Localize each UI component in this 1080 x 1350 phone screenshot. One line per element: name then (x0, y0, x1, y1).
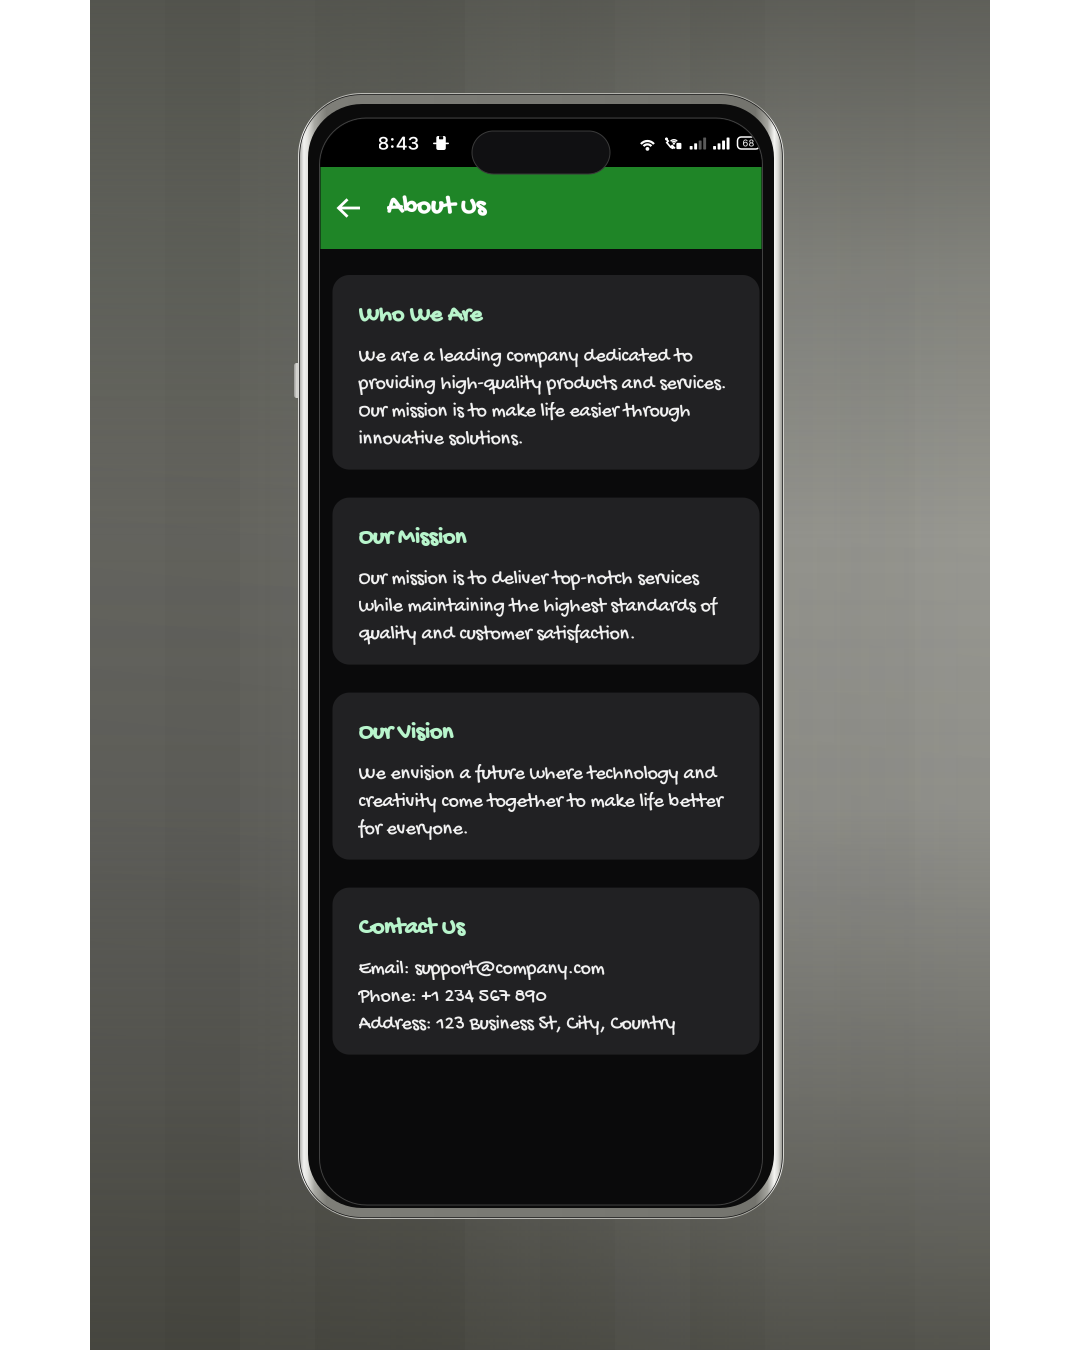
staticText: for everyone. (358, 818, 468, 842)
staticText: We envision a future where technology an… (358, 763, 716, 786)
staticText: Our Vision (358, 720, 452, 748)
staticText: Address: 123 Business St, City, Country (358, 1013, 675, 1037)
button[interactable]: Who We Are (320, 275, 761, 470)
staticText: 8:43 (377, 132, 419, 154)
staticText: 68 (742, 137, 754, 149)
staticText: We are a leading company dedicated to (358, 345, 692, 369)
staticText: About Us (386, 192, 485, 224)
staticText: Our mission is to deliver top-notch serv… (358, 568, 698, 591)
staticText: Our mission is to make life easier throu… (358, 400, 690, 424)
staticText: Phone: +1 234 567 890 (358, 985, 546, 1009)
staticText: quality and customer satisfaction. (358, 623, 635, 647)
staticText: innovative solutions. (358, 428, 523, 452)
staticText: Who We Are (358, 302, 481, 330)
staticText: creativity come together to make life be… (358, 790, 722, 814)
button[interactable]: Our Vision (320, 693, 761, 860)
staticText: Our Mission (358, 525, 465, 553)
staticText: Email: support@company.com (358, 958, 604, 981)
staticText: Contact Us (358, 915, 464, 943)
staticText: providing high-quality products and serv… (358, 373, 726, 396)
staticText: while maintaining the highest standards … (358, 595, 716, 619)
button[interactable]: Contact Us (320, 888, 761, 1055)
button[interactable]: Back (320, 180, 386, 235)
button[interactable]: Our Mission (320, 498, 761, 665)
